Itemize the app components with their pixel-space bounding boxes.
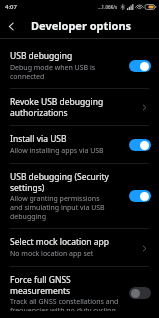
staticText: Select mock location app (10, 236, 110, 248)
staticText: Track all GNSS constellations and freque… (10, 297, 119, 311)
staticText: Allow installing apps via USB (10, 146, 104, 156)
button[interactable]: USB debugging (0, 43, 159, 88)
other: Open (137, 241, 151, 255)
staticText: USB debugging (Security settings) (10, 171, 109, 193)
staticText: ...1.06K/s (98, 4, 118, 10)
staticText: 4:07 (5, 3, 17, 11)
button[interactable]: On (129, 60, 151, 72)
button[interactable]: Select mock location app (0, 229, 159, 266)
button[interactable]: Back (0, 15, 22, 37)
button[interactable]: USB debugging (Security settings) (0, 164, 159, 228)
other: Open (137, 100, 151, 114)
staticText: Debug mode when USB is connected (10, 63, 96, 81)
button[interactable]: On (129, 190, 151, 202)
staticText: Allow granting permissions and simulatin… (10, 194, 105, 221)
staticText: USB debugging (10, 50, 73, 62)
button[interactable]: Off (129, 287, 151, 299)
button[interactable]: On (129, 139, 151, 151)
staticText: Revoke USB debugging authorizations (10, 96, 104, 118)
button[interactable]: Install via USB (0, 126, 159, 163)
staticText: No mock location app set (10, 249, 94, 259)
button[interactable]: Force full GNSS measurements (0, 267, 159, 318)
staticText: Developer options (31, 18, 132, 33)
button[interactable]: Revoke USB debugging authorizations (0, 89, 159, 125)
staticText: Install via USB (10, 133, 67, 145)
staticText: Force full GNSS measurements (10, 274, 71, 296)
